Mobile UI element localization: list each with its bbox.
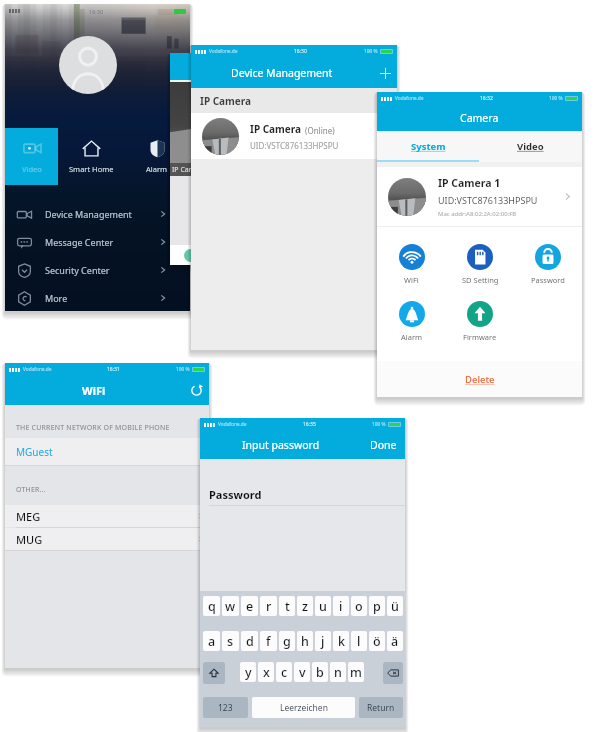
- staticText: Video: [22, 164, 42, 174]
- button[interactable]: Message Center: [5, 228, 190, 256]
- staticText: WiFi: [82, 383, 106, 398]
- staticText: 16:31: [107, 366, 120, 373]
- button[interactable]: Video: [479, 131, 582, 162]
- button[interactable]: c: [276, 662, 292, 682]
- button[interactable]: m: [348, 662, 364, 682]
- button[interactable]: f: [260, 631, 277, 651]
- button[interactable]: n: [330, 662, 346, 682]
- button[interactable]: s: [222, 631, 239, 651]
- button[interactable]: q: [203, 596, 220, 616]
- staticText: SD Setting: [462, 275, 499, 285]
- staticText: IP Camera 1: [438, 176, 501, 190]
- staticText: y: [245, 664, 252, 681]
- button[interactable]: System: [377, 131, 479, 162]
- button[interactable]: Shift: [203, 662, 225, 684]
- button[interactable]: e: [241, 596, 258, 616]
- button[interactable]: 123: [203, 697, 248, 718]
- staticText: ü: [391, 598, 399, 615]
- staticText: r: [266, 598, 272, 615]
- staticText: Device Management: [45, 208, 132, 220]
- staticText: Vodafone.de: [218, 421, 247, 428]
- staticText: h: [301, 633, 309, 650]
- button[interactable]: Firmware: [446, 301, 514, 342]
- button[interactable]: IP Camera 1: [377, 167, 582, 226]
- staticText: s: [227, 633, 234, 650]
- staticText: Vodafone.de: [395, 95, 424, 102]
- staticText: Video: [517, 140, 544, 153]
- button[interactable]: ä: [387, 631, 403, 651]
- button[interactable]: WiFi: [377, 244, 446, 285]
- button[interactable]: Alarm: [377, 301, 446, 342]
- staticText: MGuest: [16, 445, 53, 459]
- button[interactable]: More: [5, 284, 190, 312]
- staticText: (Online): [305, 125, 335, 136]
- button[interactable]: Device Management: [5, 200, 190, 228]
- button[interactable]: Smart Home: [58, 128, 124, 185]
- button[interactable]: g: [279, 631, 295, 651]
- button[interactable]: ö: [369, 631, 385, 651]
- staticText: Camera: [460, 111, 499, 125]
- staticText: 100 %: [549, 95, 563, 102]
- button[interactable]: d: [241, 631, 258, 651]
- button[interactable]: Backspace: [383, 662, 403, 684]
- staticText: Done: [370, 438, 397, 452]
- staticText: MUG: [16, 532, 43, 547]
- staticText: IP Camera: [200, 94, 252, 108]
- button[interactable]: Add device: [373, 58, 397, 88]
- button[interactable]: IP Camera: [191, 113, 397, 159]
- staticText: Message Center: [45, 236, 114, 248]
- button[interactable]: Refresh: [183, 376, 209, 405]
- button[interactable]: i: [333, 596, 349, 616]
- staticText: q: [208, 598, 216, 615]
- button[interactable]: j: [315, 631, 331, 651]
- button[interactable]: p: [369, 596, 385, 616]
- staticText: Return: [367, 702, 395, 714]
- button[interactable]: Alarm: [124, 128, 190, 185]
- button[interactable]: Leerzeichen: [252, 697, 355, 718]
- button[interactable]: t: [279, 596, 295, 616]
- button[interactable]: MGuest: [5, 438, 209, 465]
- button[interactable]: r: [260, 596, 277, 616]
- button[interactable]: l: [351, 631, 367, 651]
- staticText: MEG: [16, 509, 41, 524]
- button[interactable]: k: [333, 631, 349, 651]
- staticText: w: [225, 598, 236, 615]
- button[interactable]: Done: [362, 431, 405, 459]
- button[interactable]: v: [294, 662, 310, 682]
- button[interactable]: ü: [387, 596, 403, 616]
- button[interactable]: MUG: [5, 528, 209, 550]
- staticText: n: [334, 664, 342, 681]
- button[interactable]: w: [222, 596, 239, 616]
- button[interactable]: x: [258, 662, 274, 682]
- staticText: Delete: [465, 373, 495, 386]
- staticText: WiFi: [404, 275, 419, 285]
- button[interactable]: u: [315, 596, 331, 616]
- button[interactable]: MEG: [5, 505, 209, 527]
- staticText: 16:30: [89, 8, 104, 15]
- staticText: x: [263, 664, 270, 681]
- staticText: Smart Home: [69, 164, 114, 174]
- button[interactable]: z: [297, 596, 313, 616]
- staticText: IP Camera: [250, 122, 302, 136]
- button[interactable]: Return: [359, 697, 403, 718]
- staticText: OTHER...: [16, 485, 46, 495]
- staticText: k: [338, 633, 345, 650]
- staticText: g: [283, 633, 291, 650]
- button[interactable]: h: [297, 631, 313, 651]
- button[interactable]: SD Setting: [446, 244, 514, 285]
- staticText: Alarm: [401, 332, 423, 342]
- staticText: IP Camera: [249, 60, 298, 74]
- staticText: 16:30: [294, 48, 307, 55]
- button[interactable]: Security Center: [5, 256, 190, 284]
- button[interactable]: a: [203, 631, 220, 651]
- button[interactable]: b: [312, 662, 328, 682]
- button[interactable]: Password: [514, 244, 582, 285]
- button[interactable]: y: [240, 662, 256, 682]
- staticText: Vodafone.de: [23, 366, 52, 373]
- button[interactable]: o: [351, 596, 367, 616]
- staticText: u: [319, 598, 327, 615]
- button[interactable]: Delete: [377, 361, 582, 397]
- button[interactable]: Video: [5, 128, 58, 185]
- staticText: System: [411, 140, 446, 153]
- staticText: Password: [531, 275, 565, 285]
